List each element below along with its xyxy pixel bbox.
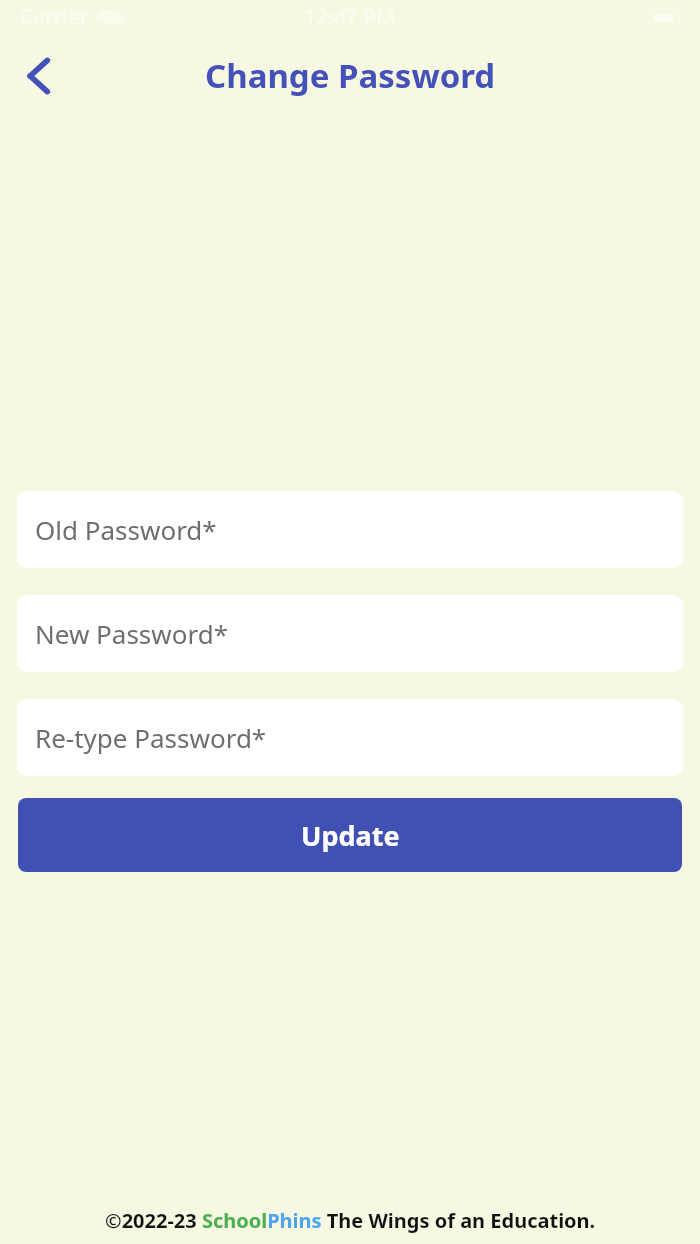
button[interactable]: Back [12, 49, 66, 103]
staticText: Re-type Password* [35, 720, 267, 755]
button[interactable]: Re-type Password* [17, 699, 683, 776]
staticText: ©2022-23 SchoolPhins The Wings of an Edu… [105, 1207, 596, 1234]
button[interactable]: New Password* [17, 595, 683, 672]
staticText: Carrier [20, 3, 89, 32]
staticText: New Password* [35, 616, 229, 651]
staticText: Change Password [205, 53, 496, 98]
staticText: Update [301, 817, 400, 854]
staticText: 12:47 PM [304, 3, 396, 32]
button[interactable]: Update [18, 798, 682, 872]
button[interactable]: Old Password* [17, 491, 683, 568]
staticText: Old Password* [35, 512, 217, 547]
